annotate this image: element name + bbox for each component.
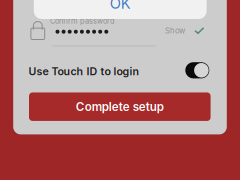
button[interactable]: OK <box>34 0 207 11</box>
staticText: OK <box>110 0 131 12</box>
button[interactable]: Complete setup <box>29 92 211 121</box>
staticText: Show <box>165 26 185 35</box>
staticText: Confirm password <box>50 16 115 25</box>
staticText: Use Touch ID to login <box>28 65 139 78</box>
staticText: Complete setup <box>76 100 164 114</box>
button[interactable]: Use Touch ID to login <box>185 62 209 78</box>
